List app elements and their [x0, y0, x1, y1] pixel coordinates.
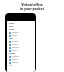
button[interactable]: [7, 55, 35, 58]
button[interactable]: [7, 49, 35, 52]
button[interactable]: [7, 25, 35, 28]
button[interactable]: [7, 58, 35, 61]
button[interactable]: [7, 28, 35, 31]
button[interactable]: [7, 34, 35, 37]
button[interactable]: [7, 37, 35, 40]
button[interactable]: [7, 43, 35, 46]
button[interactable]: [7, 61, 35, 64]
button[interactable]: [7, 31, 35, 34]
button[interactable]: [7, 40, 35, 43]
staticText: Virtual office: [0, 2, 64, 7]
button[interactable]: [7, 22, 35, 25]
button[interactable]: [7, 52, 35, 55]
button[interactable]: [7, 46, 35, 49]
staticText: in your pocket: [0, 6, 64, 11]
button[interactable]: [7, 64, 35, 67]
